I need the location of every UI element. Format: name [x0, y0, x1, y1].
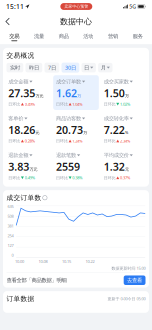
staticText: 卖家中心预警 [64, 4, 88, 9]
staticText: 30日 [65, 64, 76, 71]
button[interactable]: 客单价 [5, 112, 51, 147]
staticText: 2559 [56, 160, 80, 174]
staticText: 查看全部「商品数据」明细 [6, 277, 66, 284]
button[interactable]: 成交金额 [5, 75, 51, 110]
staticText: 10-22 [85, 259, 94, 264]
staticText: 元 [36, 130, 40, 135]
staticText: 实时 [10, 64, 20, 71]
staticText: 活动 [83, 33, 93, 39]
button[interactable]: Back [0, 14, 15, 28]
staticText: 10-08 [38, 259, 47, 264]
button[interactable]: 商品访客数 [53, 112, 99, 147]
button[interactable]: 实时 [6, 63, 23, 72]
staticText: 成交订单数 [56, 78, 81, 85]
staticText: 交易 [9, 33, 19, 39]
staticText: 商品 [59, 33, 69, 39]
button[interactable]: 服务 [125, 33, 150, 41]
staticText: 订单数据 [6, 295, 34, 303]
button[interactable]: 30日 [61, 63, 79, 73]
staticText: 退款笔数 [56, 152, 76, 159]
staticText: 数据中心 [60, 17, 92, 26]
staticText: 3.83 [8, 160, 29, 174]
staticText: 去查看 [127, 277, 142, 284]
staticText: 2.34% [120, 138, 130, 144]
button[interactable]: 退款金额 [5, 149, 51, 184]
staticText: 381 [7, 223, 13, 229]
staticText: 10-15 [62, 259, 71, 264]
staticText: 日 [84, 64, 89, 71]
staticText: 日环比 [56, 102, 68, 107]
staticText: 万元 [36, 93, 44, 98]
button[interactable]: 退款笔数 [53, 149, 99, 184]
staticText: 0 [11, 252, 13, 258]
staticText: 客单价 [8, 115, 23, 122]
staticText: 日环比 [8, 138, 20, 143]
staticText: 营销 [108, 33, 118, 39]
button[interactable]: 昨日 [25, 63, 42, 72]
button[interactable]: 成交买家数 [101, 75, 146, 110]
staticText: 508 [7, 214, 13, 219]
staticText: 1.24% [72, 138, 82, 144]
staticText: 万 [125, 93, 129, 98]
button[interactable]: 流量 [27, 33, 51, 41]
staticText: 平均成交价 [104, 152, 129, 159]
staticText: 成交买家数 [104, 78, 129, 85]
staticText: 0.49% [25, 175, 35, 180]
button[interactable]: 查看全部「商品数据」明细 [3, 273, 149, 288]
button[interactable]: 日 [81, 63, 96, 72]
staticText: 27.35 [8, 86, 35, 100]
button[interactable]: 交易 [2, 33, 27, 41]
staticText: 635 [7, 204, 13, 209]
staticText: 日环比 [104, 102, 116, 107]
button[interactable]: 商品 [51, 33, 76, 41]
staticText: 日环比 [104, 175, 116, 180]
staticText: 万 [83, 130, 87, 135]
staticText: 7.22 [104, 123, 125, 137]
staticText: 万 [77, 93, 81, 98]
staticText: 服务 [133, 33, 143, 39]
staticText: 10-00 [15, 259, 24, 264]
staticText: 成交转化率 [104, 115, 129, 122]
staticText: 1.62 [56, 86, 77, 100]
staticText: 退款金额 [8, 152, 28, 159]
staticText: 成交金额 [8, 78, 28, 85]
button[interactable]: 7日 [44, 63, 59, 73]
staticText: 1.50 [104, 86, 125, 100]
button[interactable]: 月 [98, 63, 112, 72]
staticText: 0.38% [72, 175, 82, 180]
staticText: 商品访客数 [56, 115, 81, 122]
staticText: 交易概况 [6, 51, 34, 60]
staticText: 15:11 [6, 2, 24, 11]
staticText: 日环比 [56, 175, 68, 180]
button[interactable]: 成交订单数 [53, 75, 99, 110]
staticText: 成交订单数 [6, 194, 41, 202]
staticText: 0.28% [25, 138, 35, 144]
staticText: 0.49% [25, 101, 35, 107]
staticText: 日环比 [104, 138, 116, 143]
staticText: 1.02% [120, 101, 130, 107]
staticText: 0.37% [120, 175, 130, 180]
staticText: 元 [125, 167, 129, 172]
staticText: % [125, 130, 128, 135]
staticText: 日环比 [56, 138, 68, 143]
staticText: 127 [7, 243, 13, 248]
button[interactable]: 平均成交价 [101, 149, 146, 184]
staticText: 254 [7, 233, 13, 238]
staticText: 20.73 [56, 123, 83, 137]
staticText: 1.32 [104, 160, 125, 174]
staticText: 7日 [48, 64, 56, 71]
staticText: 月 [101, 64, 106, 71]
staticText: 更新于 0-00今日 05:00 [107, 296, 145, 301]
button[interactable]: 活动 [76, 33, 101, 41]
staticText: 数据更新时间 15:00 [111, 266, 145, 271]
staticText: 日环比 [8, 102, 20, 107]
staticText: 日环比 [8, 175, 20, 180]
staticText: 18.26 [8, 123, 35, 137]
staticText: 万元 [30, 167, 38, 172]
button[interactable]: 营销 [101, 33, 125, 41]
staticText: 流量 [34, 33, 44, 39]
button[interactable]: 成交转化率 [101, 112, 146, 147]
staticText: 5G [129, 3, 136, 10]
staticText: 1.04% [72, 101, 82, 107]
staticText: 昨日 [29, 64, 39, 71]
